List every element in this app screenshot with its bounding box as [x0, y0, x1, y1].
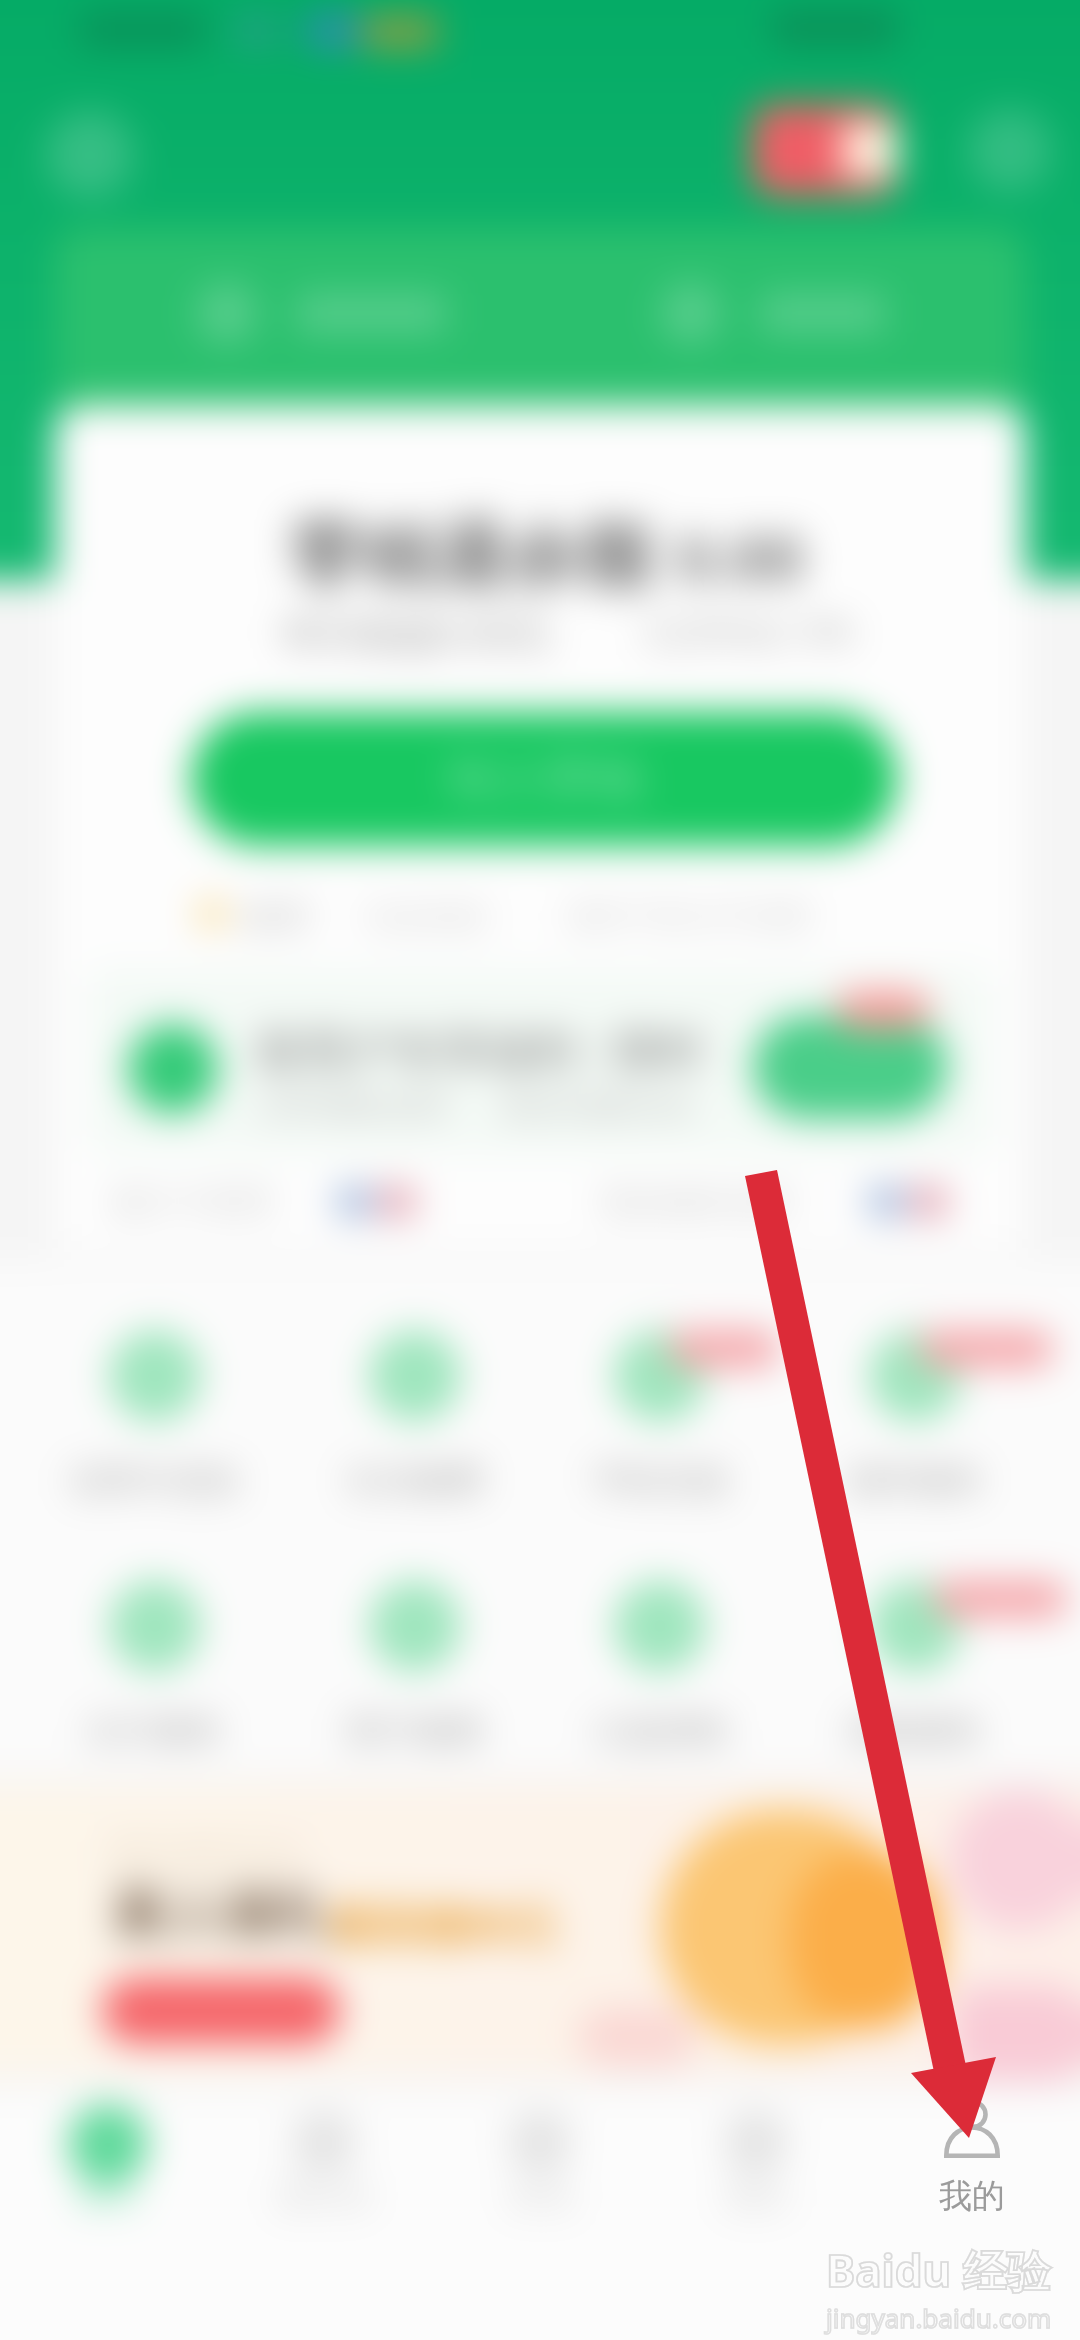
button[interactable]	[196, 278, 446, 348]
staticText: 生活缴费	[347, 1459, 483, 1502]
button[interactable]: 转入零钱	[191, 712, 898, 846]
button[interactable]	[864, 2092, 1080, 2272]
staticText: 城市服务	[847, 1459, 983, 1502]
staticText: 我的	[939, 2175, 1005, 2217]
staticText: 新用户专享福利 · 限时	[256, 1018, 707, 1081]
button[interactable]: Scan	[46, 110, 134, 198]
staticText: 昨日收益0.00元	[285, 606, 551, 658]
button[interactable]	[648, 2092, 864, 2272]
button[interactable]	[815, 1530, 1015, 1750]
button[interactable]: 我的	[864, 2092, 1080, 2242]
button[interactable]	[0, 2092, 216, 2272]
staticText: 公益捐助	[592, 1709, 728, 1752]
staticText: 更多服务说明	[600, 1182, 792, 1222]
button[interactable]	[815, 1280, 1015, 1500]
staticText: 最高领88元	[330, 1894, 557, 1954]
staticText: 0.00	[676, 514, 804, 601]
button[interactable]	[0, 1785, 1080, 2075]
button[interactable]	[55, 1530, 255, 1750]
staticText: 转入零钱	[449, 749, 641, 809]
button[interactable]	[216, 2092, 432, 2272]
button[interactable]	[315, 1530, 515, 1750]
staticText: 保险服务	[847, 1709, 983, 1752]
button[interactable]	[753, 1015, 947, 1119]
staticText: 限时福利活动	[110, 1832, 302, 1872]
staticText: Baidu 经验	[826, 2240, 1051, 2300]
staticText: 新人福礼	[114, 1880, 330, 1948]
button[interactable]	[55, 1280, 255, 1500]
staticText: 微信	[77, 2175, 139, 2214]
button[interactable]	[660, 278, 885, 348]
staticText: 零钱通余额	[288, 512, 653, 604]
staticText: jingyan.baidu.com	[826, 2300, 1052, 2335]
button[interactable]: More	[968, 108, 1052, 192]
button[interactable]	[752, 104, 898, 196]
button[interactable]	[560, 1280, 760, 1500]
button[interactable]	[432, 2092, 648, 2272]
staticText: 出行服务	[87, 1709, 223, 1752]
button[interactable]	[315, 1280, 515, 1500]
button[interactable]	[88, 968, 992, 1154]
button[interactable]	[560, 1530, 760, 1750]
